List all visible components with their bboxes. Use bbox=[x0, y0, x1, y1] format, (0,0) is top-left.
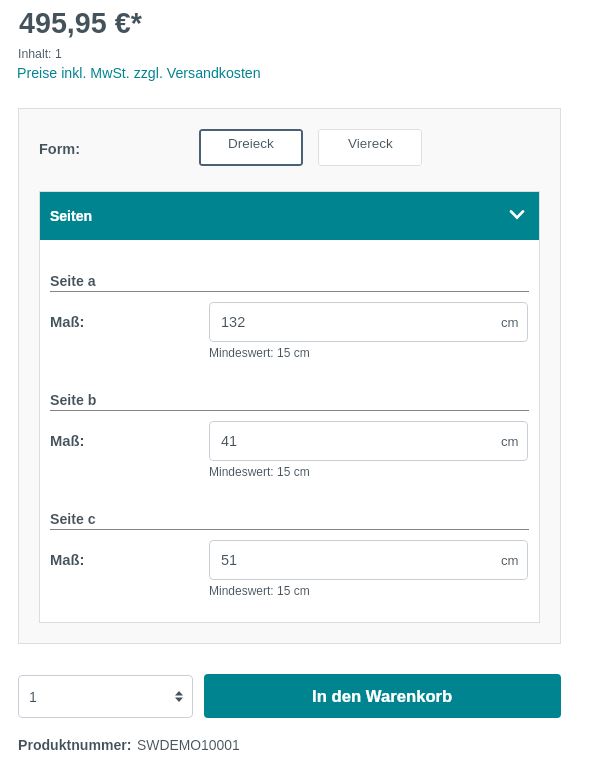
button[interactable]: Dreieck bbox=[199, 129, 303, 166]
staticText: Maß: bbox=[50, 552, 85, 569]
staticText: Mindeswert: 15 cm bbox=[209, 346, 310, 359]
staticText: SWDEMO10001 bbox=[137, 737, 240, 753]
staticText: cm bbox=[501, 434, 519, 449]
staticText: Seite c bbox=[50, 511, 96, 527]
staticText: Produktnummer: bbox=[18, 737, 132, 753]
staticText: Mindeswert: 15 cm bbox=[209, 584, 310, 597]
staticText: Mindeswert: 15 cm bbox=[209, 465, 310, 478]
button[interactable]: In den Warenkorb bbox=[204, 674, 561, 718]
button[interactable]: Viereck bbox=[318, 129, 422, 166]
other: Menge ändern bbox=[175, 691, 183, 702]
staticText: Dreieck bbox=[228, 136, 274, 151]
staticText: Form: bbox=[39, 141, 81, 157]
staticText: 495,95 €* bbox=[19, 7, 142, 39]
button[interactable]: Seiten bbox=[39, 191, 540, 240]
staticText: 51 bbox=[221, 552, 238, 568]
button[interactable]: 41 bbox=[209, 421, 528, 461]
staticText: cm bbox=[501, 553, 519, 568]
staticText: cm bbox=[501, 315, 519, 330]
button[interactable]: Preise inkl. MwSt. zzgl. Versandkosten bbox=[17, 65, 261, 81]
staticText: Viereck bbox=[348, 136, 393, 151]
other: Zuklappen bbox=[507, 204, 527, 224]
staticText: In den Warenkorb bbox=[312, 687, 453, 706]
button[interactable]: 51 bbox=[209, 540, 528, 580]
staticText: Seite b bbox=[50, 392, 97, 408]
staticText: Maß: bbox=[50, 433, 85, 450]
button[interactable]: 1 bbox=[18, 675, 193, 718]
staticText: Seiten bbox=[50, 208, 93, 224]
staticText: Seite a bbox=[50, 273, 96, 289]
staticText: Maß: bbox=[50, 314, 85, 331]
button[interactable]: 132 bbox=[209, 302, 528, 342]
staticText: 132 bbox=[221, 314, 246, 330]
staticText: 1 bbox=[29, 689, 37, 705]
staticText: 41 bbox=[221, 433, 238, 449]
staticText: Inhalt: 1 bbox=[18, 47, 62, 61]
